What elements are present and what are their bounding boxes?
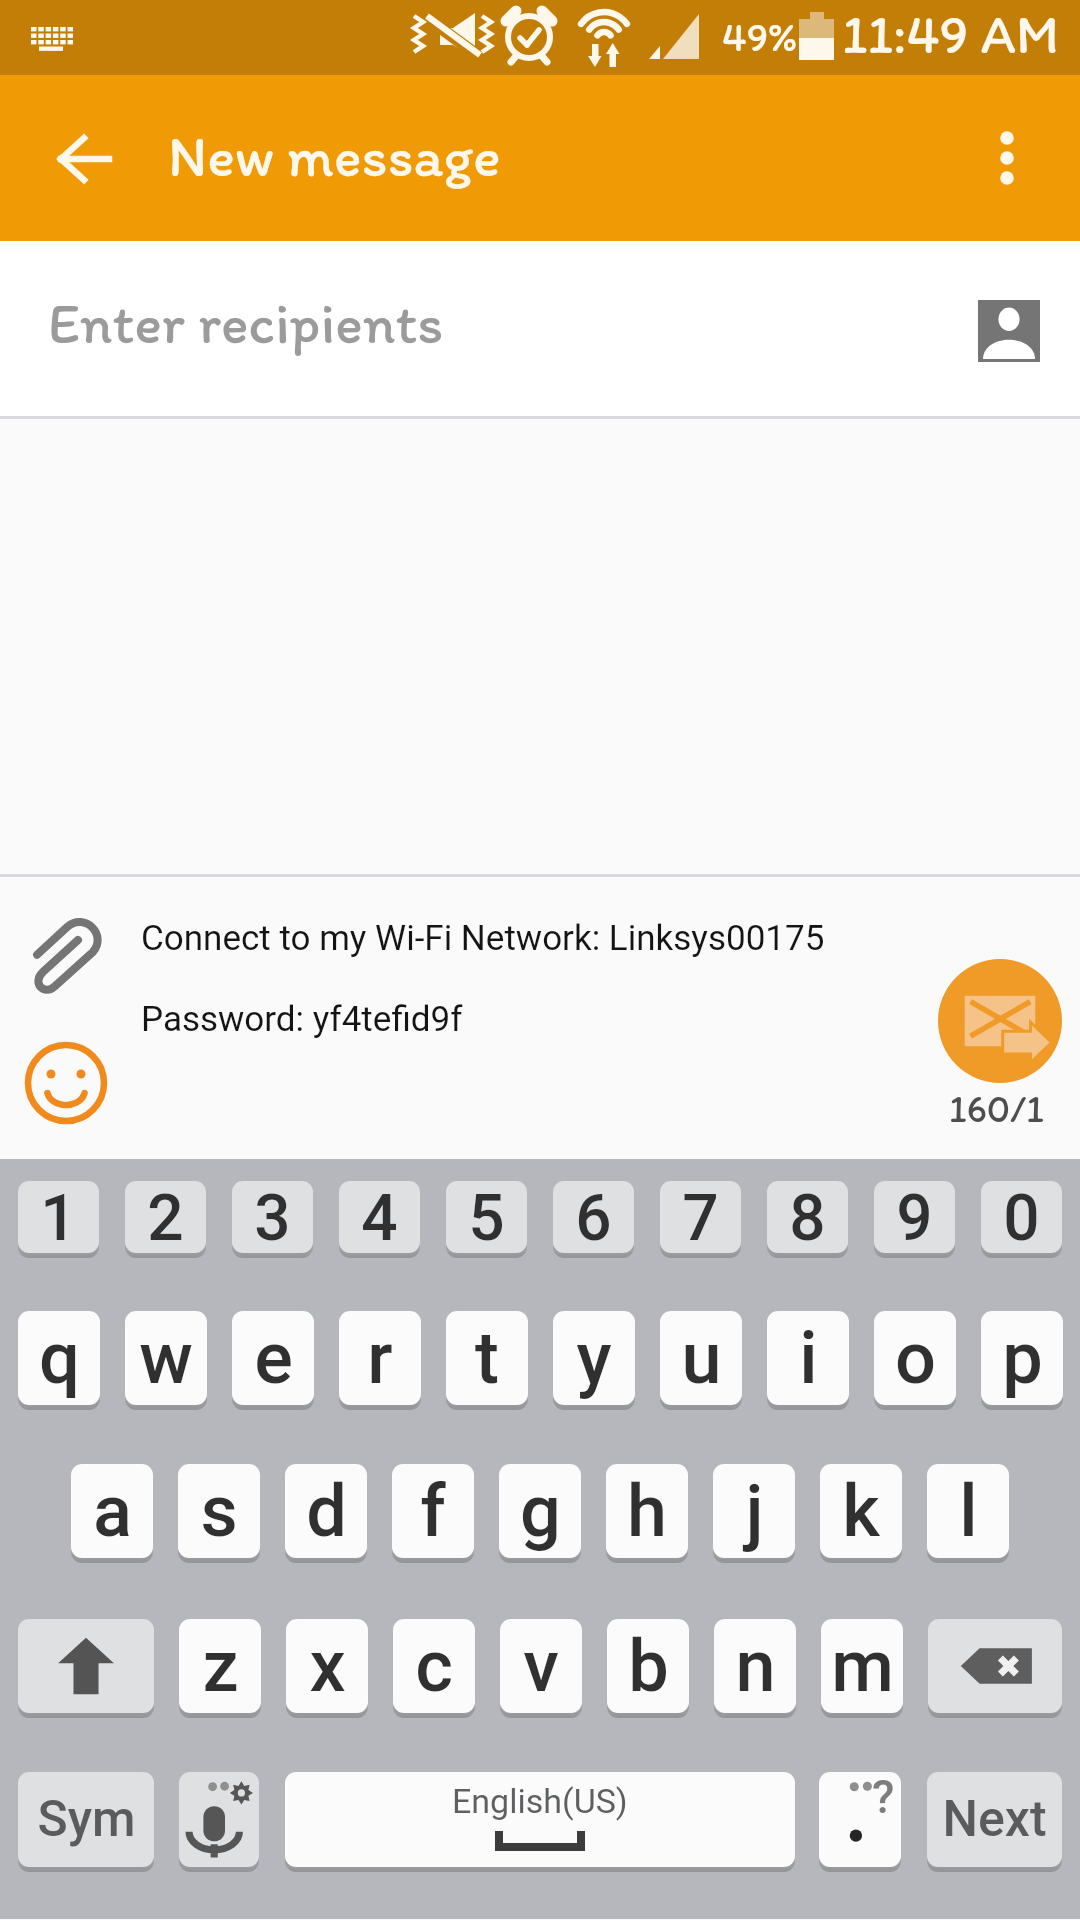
staticText: b (628, 1624, 669, 1708)
button[interactable]: u (660, 1311, 742, 1405)
button[interactable]: g (499, 1464, 581, 1558)
staticText: Next (942, 1790, 1047, 1849)
staticText: y (576, 1316, 612, 1400)
button[interactable]: o (874, 1311, 956, 1405)
button[interactable]: t (446, 1311, 528, 1405)
button[interactable]: k (820, 1464, 902, 1558)
button[interactable]: 2 (125, 1181, 206, 1253)
staticText: q (39, 1316, 80, 1400)
staticText: g (520, 1469, 561, 1553)
staticText: 0 (1003, 1181, 1040, 1253)
button[interactable]: h (606, 1464, 688, 1558)
staticText: t (475, 1316, 499, 1400)
button[interactable]: w (125, 1311, 207, 1405)
staticText: m (831, 1624, 894, 1708)
staticText: f (420, 1469, 446, 1553)
button[interactable]: 7 (660, 1181, 741, 1253)
staticText: 11:49 AM (842, 1, 1060, 67)
button[interactable]: n (714, 1619, 796, 1713)
button[interactable]: z (179, 1619, 261, 1713)
button[interactable]: q (18, 1311, 100, 1405)
button[interactable]: Add recipient from contacts (957, 279, 1061, 383)
staticText: a (93, 1469, 132, 1553)
staticText: c (415, 1624, 453, 1708)
button[interactable]: a (71, 1464, 153, 1558)
button[interactable]: Backspace (928, 1619, 1062, 1713)
button[interactable]: e (232, 1311, 314, 1405)
staticText: w (139, 1316, 193, 1400)
button[interactable]: 0 (981, 1181, 1062, 1253)
staticText: 9 (896, 1181, 933, 1253)
staticText: h (627, 1469, 667, 1553)
button[interactable]: c (393, 1619, 475, 1713)
button[interactable]: More options (951, 102, 1063, 214)
staticText: j (745, 1469, 764, 1553)
button[interactable]: y (553, 1311, 635, 1405)
staticText: l (959, 1469, 978, 1553)
staticText: 8 (789, 1181, 826, 1253)
button[interactable]: Navigate back (29, 102, 141, 214)
staticText: s (200, 1469, 238, 1553)
button[interactable]: s (178, 1464, 260, 1558)
button[interactable]: p (981, 1311, 1063, 1405)
staticText: Enter recipients (48, 288, 444, 358)
staticText: 5 (468, 1181, 505, 1253)
button[interactable]: 5 (446, 1181, 527, 1253)
staticText: k (842, 1469, 880, 1553)
staticText: x (309, 1624, 346, 1708)
staticText: Sym (37, 1790, 136, 1849)
staticText: n (735, 1624, 776, 1708)
staticText: o (895, 1316, 936, 1400)
staticText: i (799, 1316, 818, 1400)
button[interactable]: Enter recipients (0, 241, 1080, 419)
staticText: z (202, 1624, 239, 1708)
button[interactable]: r (339, 1311, 421, 1405)
button[interactable]: i (767, 1311, 849, 1405)
button[interactable]: b (607, 1619, 689, 1713)
button[interactable]: Voice input (179, 1772, 259, 1867)
button[interactable]: Shift (18, 1619, 154, 1713)
button[interactable]: m (821, 1619, 903, 1713)
staticText: English(US) (452, 1781, 628, 1821)
staticText: r (367, 1316, 393, 1400)
staticText: 3 (254, 1181, 291, 1253)
button[interactable]: f (392, 1464, 474, 1558)
button[interactable]: Send message (938, 959, 1062, 1083)
button[interactable]: 6 (553, 1181, 634, 1253)
staticText: d (306, 1469, 347, 1553)
staticText: ? (872, 1772, 895, 1824)
button[interactable]: x (286, 1619, 368, 1713)
staticText: 49% (722, 12, 798, 61)
button[interactable]: Sym (18, 1772, 154, 1867)
button[interactable]: 1 (18, 1181, 99, 1253)
button[interactable]: 9 (874, 1181, 955, 1253)
staticText: p (1002, 1316, 1043, 1400)
button[interactable]: Next (927, 1772, 1062, 1867)
staticText: 7 (682, 1181, 719, 1253)
staticText: 6 (575, 1181, 612, 1253)
staticText: Password: yf4tefid9f (141, 999, 463, 1040)
staticText: e (254, 1316, 293, 1400)
button[interactable]: d (285, 1464, 367, 1558)
staticText: u (681, 1316, 722, 1400)
button[interactable]: 8 (767, 1181, 848, 1253)
staticText: Connect to my Wi-Fi Network: Linksys0017… (141, 918, 825, 959)
button[interactable]: j (713, 1464, 795, 1558)
staticText: 1 (40, 1181, 77, 1253)
staticText: 160/1 (949, 1086, 1044, 1132)
button[interactable]: 3 (232, 1181, 313, 1253)
button[interactable]: Punctuation (819, 1772, 901, 1867)
button[interactable]: l (927, 1464, 1009, 1558)
staticText: 4 (361, 1181, 398, 1253)
button[interactable]: v (500, 1619, 582, 1713)
button[interactable]: Insert emoji (16, 1033, 116, 1133)
staticText: New message (168, 121, 501, 191)
staticText: v (523, 1624, 559, 1708)
button[interactable]: 4 (339, 1181, 420, 1253)
staticText: 2 (147, 1181, 184, 1253)
button[interactable]: English(US) (285, 1772, 795, 1867)
